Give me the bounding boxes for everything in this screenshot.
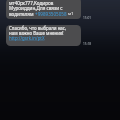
staticText: http://gsrk.in/ptX bbox=[9, 35, 45, 41]
staticText: +99893505058 bbox=[35, 11, 67, 17]
staticText: 15:18 bbox=[83, 42, 92, 46]
staticText: Спасибо, что выбрали нас, bbox=[9, 25, 67, 31]
staticText: Муроиддин,Для связи с bbox=[9, 5, 63, 11]
staticText: м1 bbox=[67, 11, 74, 17]
button[interactable]: Спасибо, что выбрали нас, bbox=[6, 25, 81, 46]
button[interactable]: мт40рх777,Кодиров bbox=[6, 0, 81, 19]
staticText: водителям bbox=[9, 11, 35, 17]
staticText: мт40рх777,Кодиров bbox=[9, 0, 54, 6]
staticText: нам важно Ваше мнение! bbox=[9, 30, 64, 36]
staticText: 15:01 bbox=[83, 16, 92, 20]
